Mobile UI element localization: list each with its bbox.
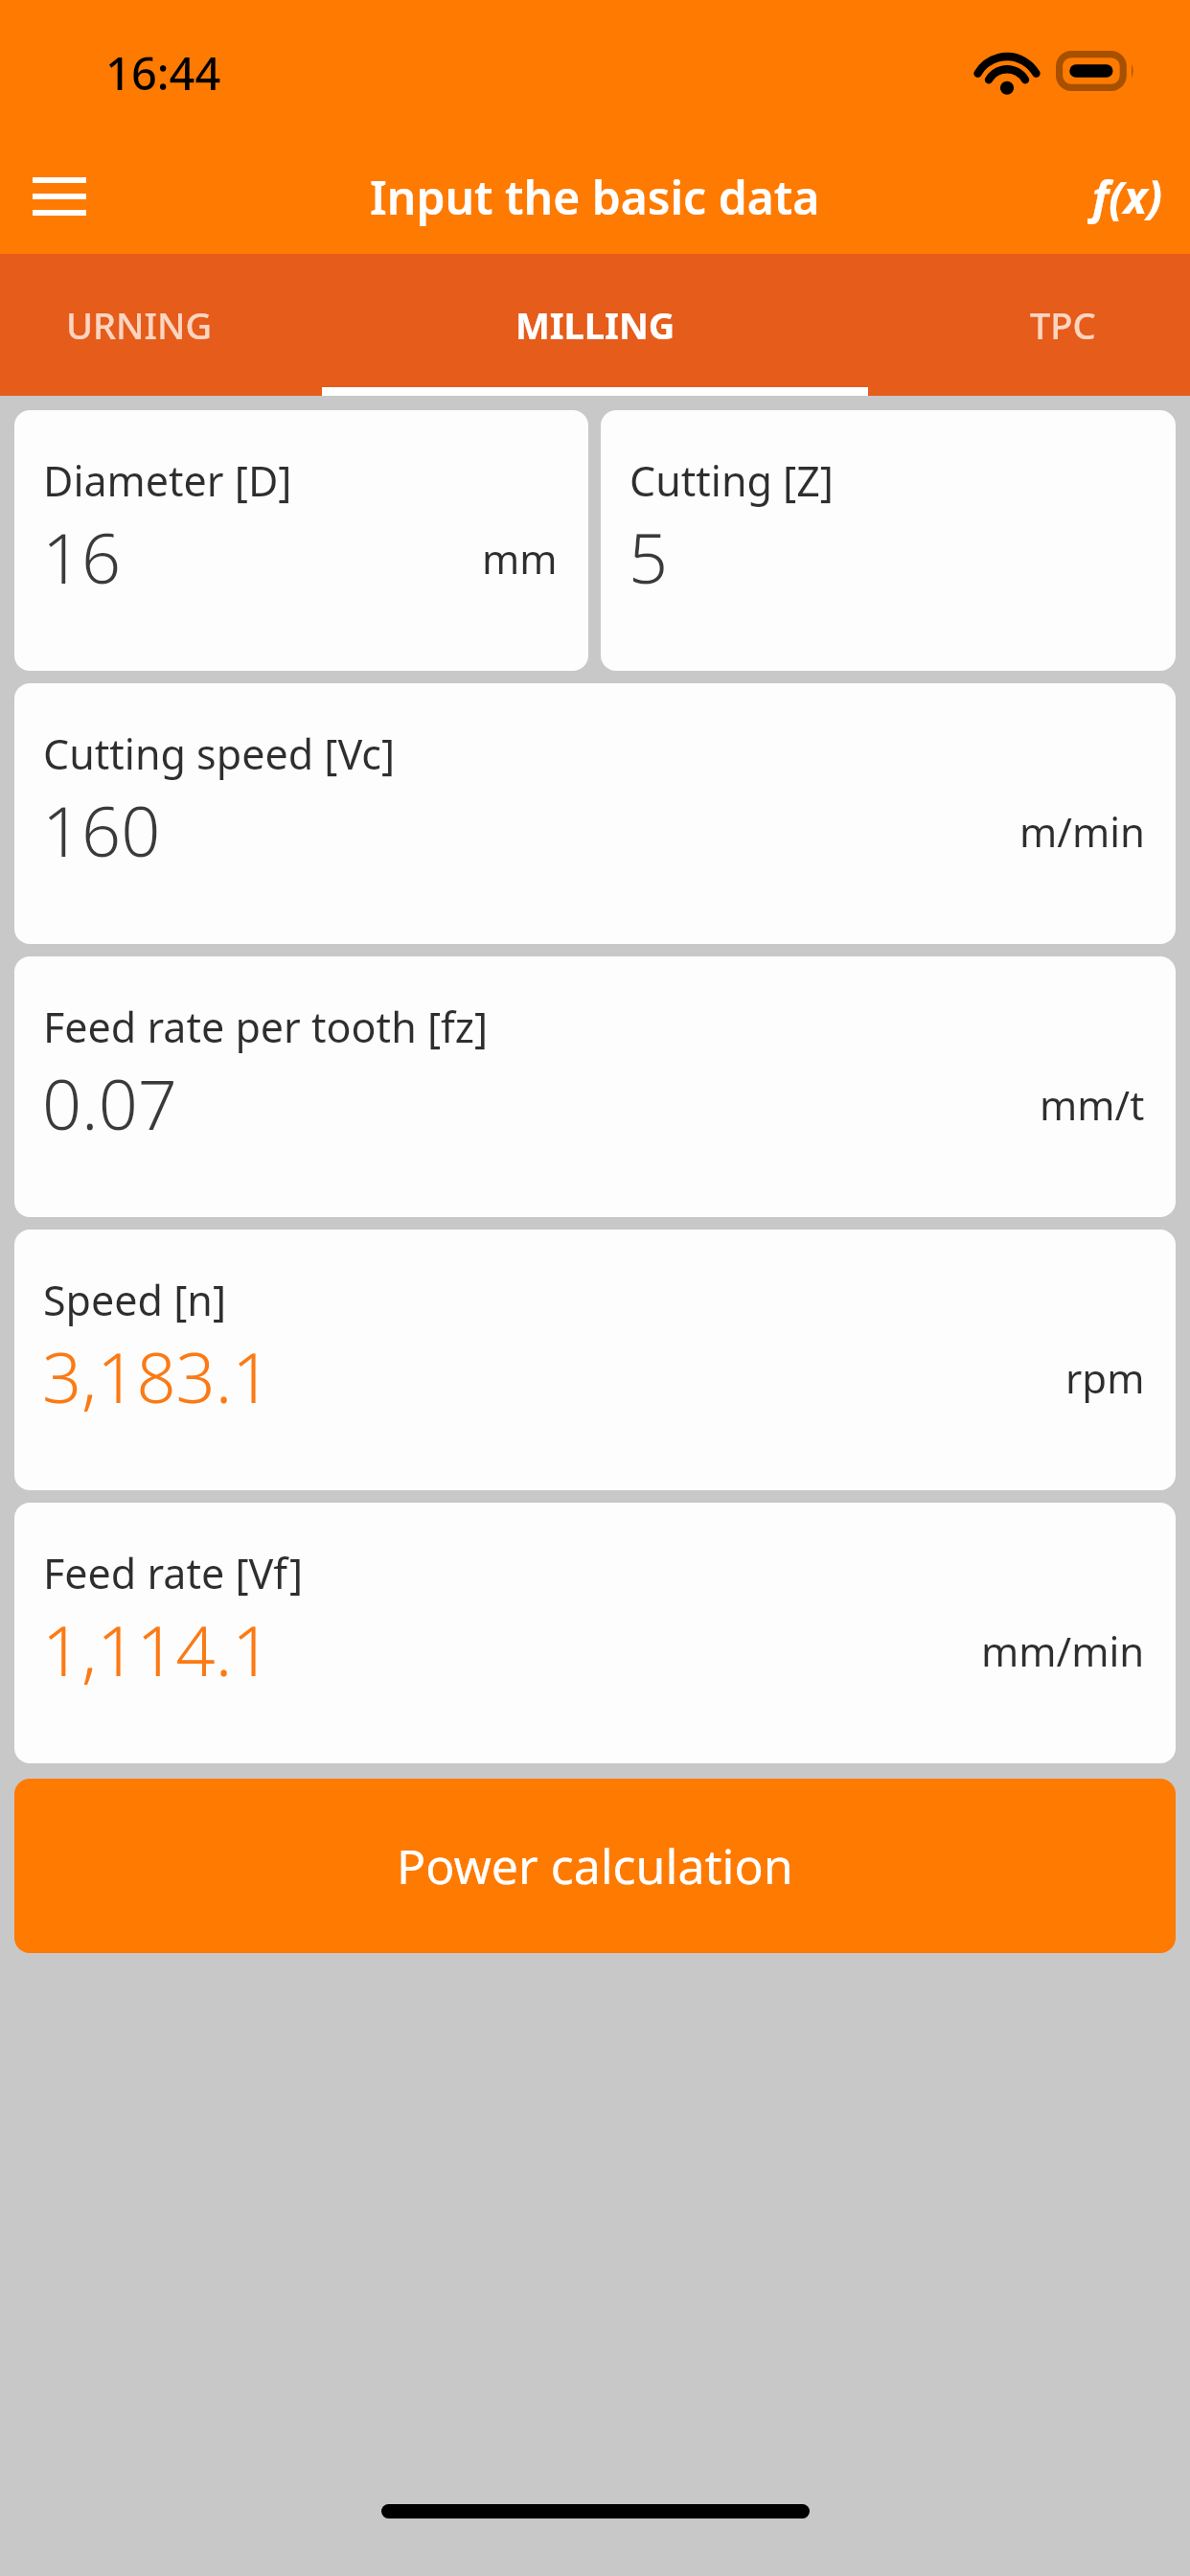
button[interactable]: URNING	[0, 254, 397, 396]
staticText: 0.07	[42, 1056, 177, 1150]
staticText: 3,183.1	[42, 1329, 272, 1423]
button[interactable]: Cutting [Z]	[601, 410, 1176, 671]
staticText: Input the basic data	[370, 166, 820, 228]
button[interactable]: Formulas	[1065, 142, 1190, 252]
staticText: Cutting speed [Vc]	[43, 725, 396, 782]
button[interactable]: Cutting speed [Vc]	[14, 683, 1176, 944]
staticText: Diameter [D]	[43, 452, 292, 509]
button[interactable]: Diameter [D]	[14, 410, 588, 671]
staticText: 16	[42, 510, 122, 604]
button[interactable]: TPC	[793, 254, 1190, 396]
staticText: URNING	[66, 300, 213, 350]
staticText: Power calculation	[397, 1833, 793, 1898]
staticText: m/min	[1019, 804, 1145, 859]
button[interactable]: Feed rate [Vf]	[14, 1503, 1176, 1763]
staticText: rpm	[1065, 1350, 1145, 1405]
button[interactable]: MILLING	[397, 254, 793, 396]
button[interactable]: Feed rate per tooth [fz]	[14, 956, 1176, 1217]
staticText: f(x)	[1092, 167, 1163, 227]
staticText: 160	[42, 783, 161, 877]
staticText: Feed rate [Vf]	[43, 1545, 304, 1601]
staticText: Cutting [Z]	[629, 452, 834, 509]
staticText: 16:44	[105, 42, 221, 103]
staticText: Speed [n]	[43, 1272, 227, 1328]
staticText: TPC	[1030, 300, 1096, 350]
staticText: mm/min	[981, 1623, 1145, 1678]
staticText: mm/t	[1040, 1077, 1145, 1132]
staticText: Feed rate per tooth [fz]	[43, 999, 489, 1055]
button[interactable]: Power calculation	[14, 1779, 1176, 1953]
button[interactable]: Speed [n]	[14, 1230, 1176, 1490]
button[interactable]: Open navigation menu	[6, 143, 113, 250]
staticText: mm	[482, 531, 558, 586]
staticText: 5	[629, 510, 669, 604]
staticText: MILLING	[515, 300, 675, 350]
staticText: 1,114.1	[42, 1602, 272, 1696]
